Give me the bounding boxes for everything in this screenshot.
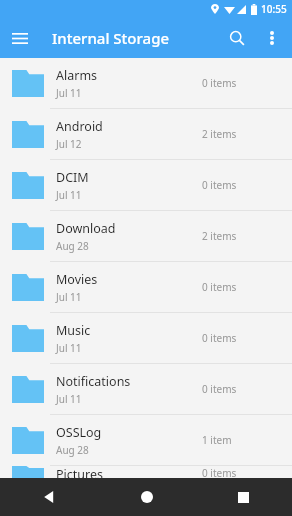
staticText: 0 items (202, 466, 237, 478)
staticText: Movies (56, 271, 98, 288)
staticText: 1 item (202, 433, 232, 447)
staticText: Aug 28 (56, 239, 89, 253)
button[interactable]: Movies (0, 262, 292, 313)
button[interactable]: Alarms (0, 58, 292, 109)
staticText: 2 items (202, 229, 237, 243)
button[interactable]: Open navigation drawer (0, 18, 40, 58)
button[interactable]: Search (218, 19, 256, 57)
staticText: Internal Storage (52, 28, 170, 48)
staticText: Android (56, 118, 103, 135)
button[interactable]: Android (0, 109, 292, 160)
staticText: Jul 11 (56, 188, 82, 202)
button[interactable]: More options (256, 22, 288, 54)
button[interactable]: Back (0, 478, 98, 516)
staticText: Pictures (56, 466, 103, 478)
staticText: 0 items (202, 331, 237, 345)
staticText: Alarms (56, 67, 98, 84)
button[interactable]: DCIM (0, 160, 292, 211)
staticText: Jul 12 (56, 137, 82, 151)
button[interactable]: Pictures (0, 466, 292, 478)
button[interactable]: Notifications (0, 364, 292, 415)
staticText: 2 items (202, 127, 237, 141)
staticText: Music (56, 322, 91, 339)
staticText: Jul 11 (56, 392, 82, 406)
staticText: 0 items (202, 280, 237, 294)
staticText: OSSLog (56, 424, 102, 441)
staticText: Download (56, 220, 116, 237)
staticText: Jul 11 (56, 290, 82, 304)
staticText: DCIM (56, 169, 89, 186)
staticText: Notifications (56, 373, 131, 390)
staticText: 0 items (202, 382, 237, 396)
staticText: 10:55 (261, 2, 287, 16)
staticText: Jul 11 (56, 86, 82, 100)
button[interactable]: Recent apps (195, 478, 292, 516)
staticText: 0 items (202, 178, 237, 192)
staticText: Jul 11 (56, 341, 82, 355)
staticText: Aug 28 (56, 443, 89, 457)
button[interactable]: Download (0, 211, 292, 262)
button[interactable]: OSSLog (0, 415, 292, 466)
staticText: 0 items (202, 76, 237, 90)
button[interactable]: Music (0, 313, 292, 364)
button[interactable]: Home (98, 478, 195, 516)
